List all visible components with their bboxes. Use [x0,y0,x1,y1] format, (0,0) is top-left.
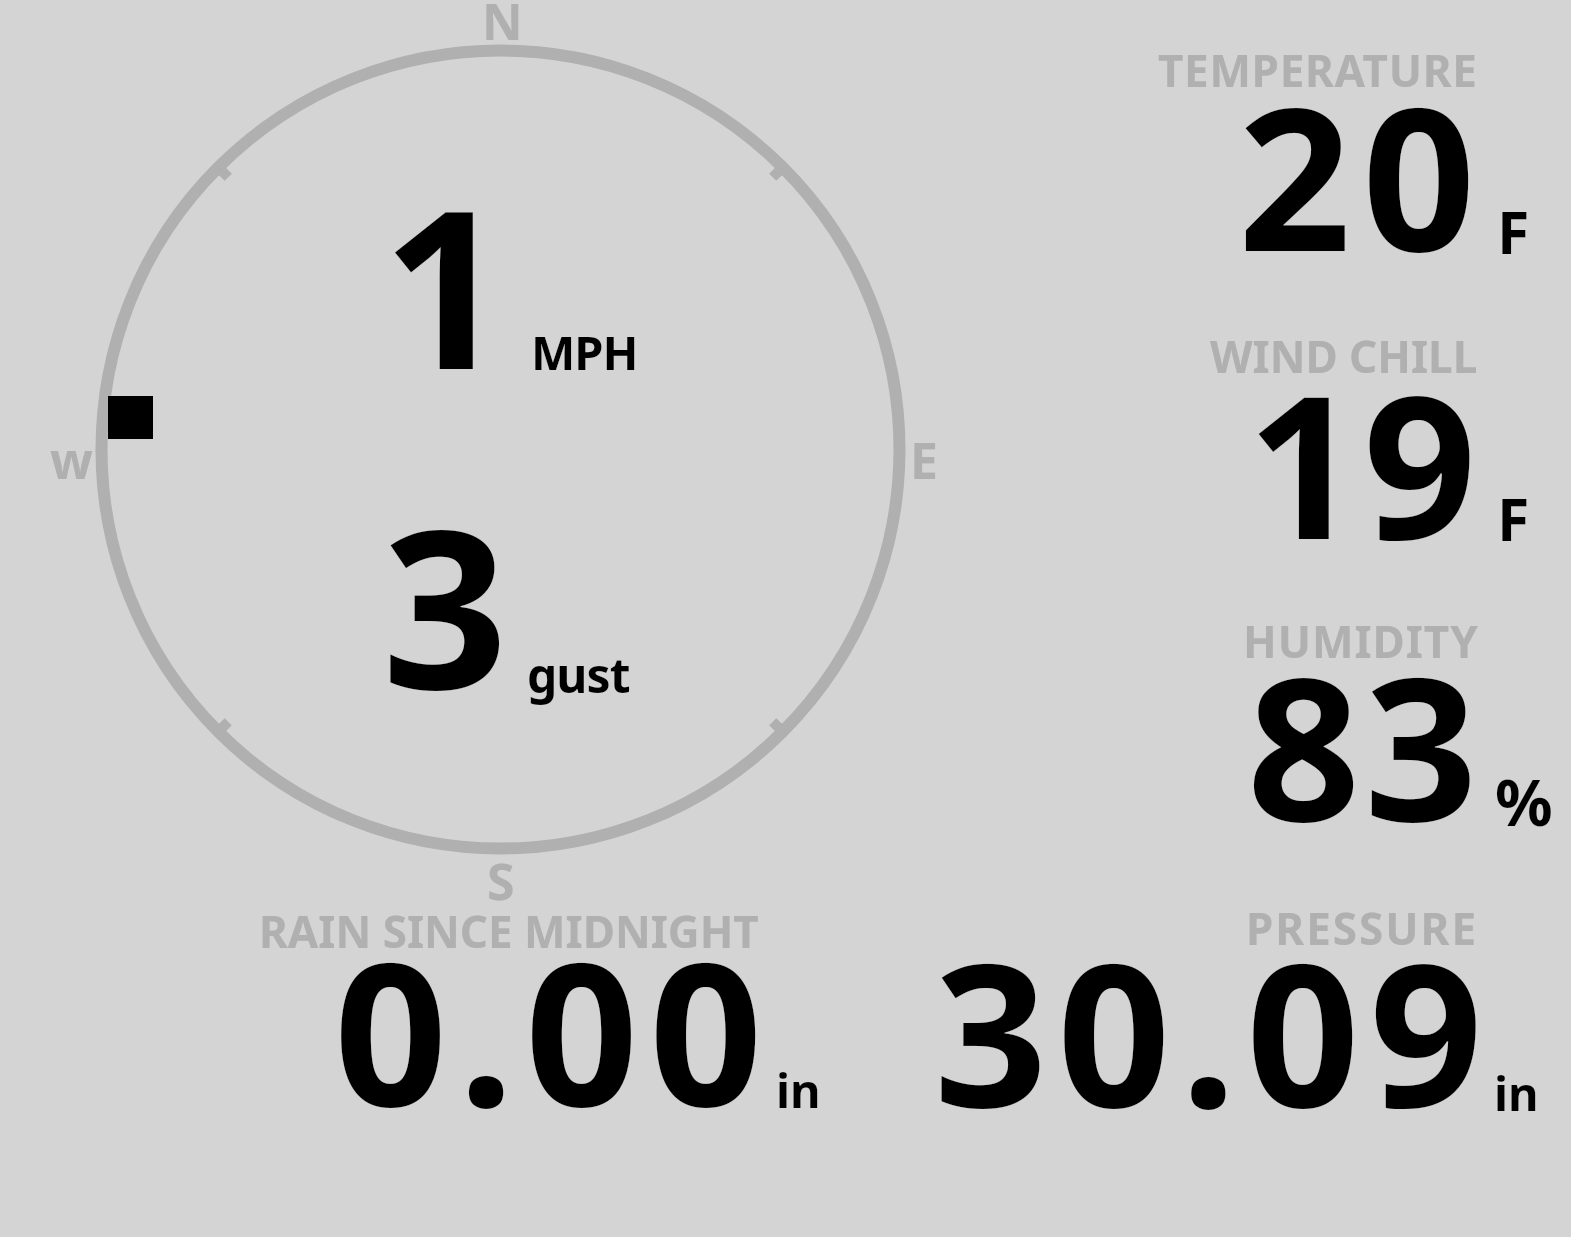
staticText: PRESSURE [1246,898,1479,958]
staticText: 83 [1247,609,1482,879]
staticText: N [482,0,523,55]
button[interactable]: Humidity 83 percent [1000,610,1540,840]
staticText: 1 [382,134,508,434]
staticText: S [487,847,515,915]
staticText: WIND CHILL [1210,326,1478,386]
staticText: % [1495,758,1553,845]
staticText: F [1497,478,1530,558]
staticText: w [50,426,93,494]
button[interactable]: Pressure 30.09 inches [930,900,1540,1125]
staticText: 19 [1247,327,1480,597]
staticText: RAIN SINCE MIDNIGHT [259,901,759,961]
staticText: TEMPERATURE [1158,40,1478,100]
staticText: gust [527,642,630,707]
staticText: in [1494,1061,1539,1125]
button[interactable]: Temperature 20 degrees Fahrenheit [1000,40,1540,270]
staticText: 3 [382,454,508,754]
staticText: E [910,426,938,494]
staticText: HUMIDITY [1243,611,1479,671]
staticText: 0.00 [334,894,774,1164]
staticText: F [1497,191,1530,271]
button[interactable]: Wind chill 19 degrees Fahrenheit [1000,325,1540,555]
staticText: 30.09 [934,895,1493,1165]
button[interactable]: Wind direction compass, 1 miles per hour… [60,30,950,910]
button[interactable]: Rain since midnight 0.00 inches [250,900,830,1125]
staticText: in [776,1058,821,1122]
staticText: 20 [1238,39,1487,309]
staticText: MPH [531,320,638,384]
